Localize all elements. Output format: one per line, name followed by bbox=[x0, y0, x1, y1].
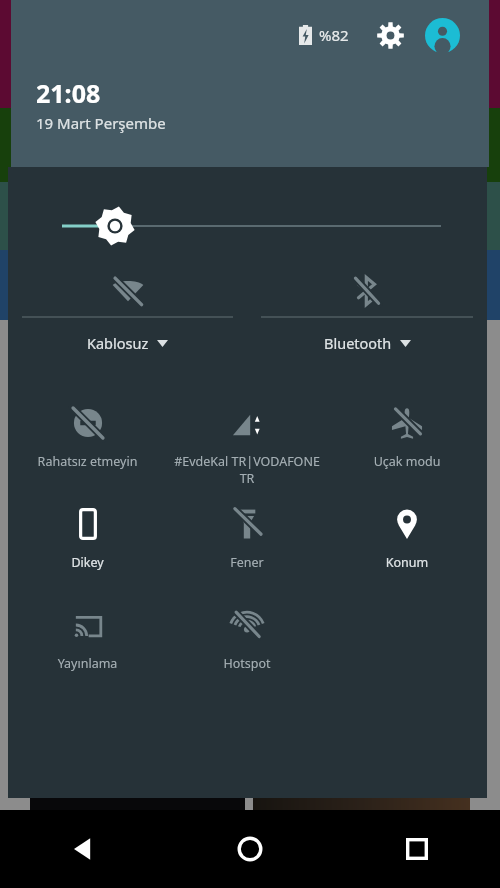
staticText: Bluetooth bbox=[324, 333, 392, 353]
staticText: Hotspot bbox=[173, 655, 321, 672]
staticText: #EvdeKal TR|VODAFONE TR bbox=[173, 453, 321, 487]
staticText: 19 Mart Perşembe bbox=[36, 113, 166, 133]
button[interactable]: Kablosuz bbox=[8, 265, 247, 353]
button[interactable]: Fener bbox=[167, 496, 327, 597]
button[interactable]: Recents bbox=[333, 810, 500, 888]
button[interactable]: Dikey bbox=[8, 496, 167, 597]
button[interactable]: Yayınlama bbox=[8, 597, 167, 698]
staticText: 21:08 bbox=[36, 76, 101, 110]
button[interactable]: Settings bbox=[369, 14, 411, 56]
staticText: %82 bbox=[319, 25, 349, 45]
button[interactable]: Back bbox=[0, 810, 166, 888]
staticText: Konum bbox=[333, 554, 481, 571]
button[interactable]: Brightness bbox=[8, 203, 487, 249]
button[interactable]: Uçak modu bbox=[327, 395, 487, 496]
button[interactable]: Hotspot bbox=[167, 597, 327, 698]
staticText: Fener bbox=[173, 554, 321, 571]
button[interactable]: User profile bbox=[421, 14, 463, 56]
button[interactable]: Bluetooth bbox=[247, 265, 487, 353]
button[interactable]: Konum bbox=[327, 496, 487, 597]
button[interactable]: Rahatsız etmeyin bbox=[8, 395, 167, 496]
staticText: Uçak modu bbox=[333, 453, 481, 470]
staticText: Rahatsız etmeyin bbox=[14, 453, 161, 470]
staticText: Yayınlama bbox=[14, 655, 161, 672]
staticText: Dikey bbox=[14, 554, 161, 571]
button[interactable]: Home bbox=[166, 810, 333, 888]
button[interactable]: #EvdeKal TR|VODAFONE TR bbox=[167, 395, 327, 496]
staticText: Kablosuz bbox=[87, 333, 149, 353]
